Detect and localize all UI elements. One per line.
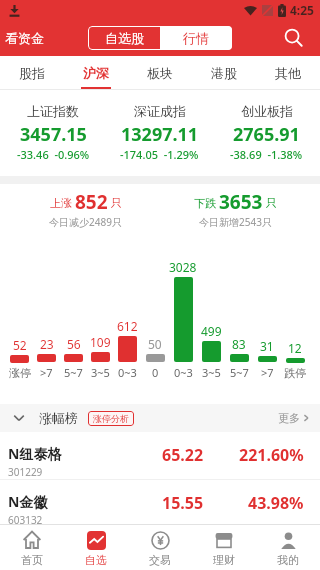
staticText: 上证指数 <box>27 103 79 119</box>
button[interactable]: 深证成指 <box>106 90 213 162</box>
staticText: 涨停 <box>9 366 31 380</box>
staticText: 56 <box>67 336 81 352</box>
staticText: 深证成指 <box>134 103 186 119</box>
staticText: 创业板指 <box>241 103 293 119</box>
staticText: 499 <box>201 323 222 339</box>
staticText: 2765.91 <box>233 122 300 147</box>
button[interactable]: 上证指数 <box>0 90 106 162</box>
staticText: 3028 <box>169 259 197 275</box>
staticText: 5~7 <box>64 365 83 380</box>
staticText: 301229 <box>8 465 43 479</box>
staticText: 上涨 <box>50 195 75 210</box>
staticText: -33.46 -0.96% <box>17 147 90 162</box>
staticText: >7 <box>261 365 274 380</box>
button[interactable]: 股指 <box>0 56 64 89</box>
staticText: 港股 <box>211 65 237 81</box>
staticText: 3457.15 <box>20 122 87 147</box>
staticText: 109 <box>90 334 111 350</box>
button[interactable]: N纽泰格 <box>0 432 320 479</box>
staticText: 12 <box>288 340 302 356</box>
button[interactable]: 交易 <box>128 525 192 570</box>
staticText: 23 <box>40 336 54 352</box>
staticText: 65.22 <box>162 444 204 466</box>
staticText: 沪深 <box>83 65 109 81</box>
staticText: 自选股 <box>105 30 144 46</box>
staticText: 我的 <box>277 553 299 567</box>
staticText: 221.60% <box>239 444 304 466</box>
staticText: 612 <box>117 318 138 334</box>
button[interactable]: 港股 <box>192 56 256 89</box>
staticText: 3653 <box>219 189 263 215</box>
button[interactable]: 涨停分析 <box>88 411 134 426</box>
staticText: N金徽 <box>8 492 48 511</box>
staticText: 3~5 <box>202 365 221 380</box>
staticText: 更多 <box>278 411 300 425</box>
staticText: 5~7 <box>230 365 249 380</box>
staticText: 只 <box>263 195 277 210</box>
button[interactable]: N金徽 <box>0 480 320 524</box>
staticText: 31 <box>260 338 274 354</box>
staticText: 83 <box>232 336 246 352</box>
staticText: 跌停 <box>284 366 306 380</box>
staticText: 股指 <box>19 65 45 81</box>
button[interactable]: 沪深 <box>64 56 128 89</box>
staticText: 13297.11 <box>121 122 199 147</box>
button[interactable]: 其他 <box>256 56 320 89</box>
staticText: 52 <box>13 337 27 353</box>
staticText: 50 <box>148 336 162 352</box>
button[interactable]: 首页 <box>0 525 64 570</box>
staticText: 852 <box>75 189 108 215</box>
staticText: 板块 <box>147 65 173 81</box>
staticText: 今日新增2543只 <box>199 215 272 229</box>
staticText: -174.05 -1.29% <box>120 147 199 162</box>
button[interactable]: 看资金 <box>5 30 44 46</box>
staticText: 只 <box>108 195 122 210</box>
button[interactable]: 更多 <box>278 411 310 425</box>
button[interactable] <box>282 26 306 50</box>
staticText: 下跌 <box>194 195 219 210</box>
button[interactable]: 自选股 <box>88 26 160 50</box>
staticText: 0~3 <box>174 365 193 380</box>
button[interactable]: 创业板指 <box>213 90 320 162</box>
staticText: 603132 <box>8 513 43 524</box>
button[interactable]: 行情 <box>160 26 232 50</box>
staticText: 15.55 <box>162 492 204 514</box>
staticText: 其他 <box>275 65 301 81</box>
button[interactable]: 板块 <box>128 56 192 89</box>
staticText: 理财 <box>213 553 235 567</box>
button[interactable]: 自选 <box>64 525 128 570</box>
staticText: 首页 <box>21 553 43 567</box>
staticText: 自选 <box>85 553 107 567</box>
staticText: 涨停分析 <box>93 413 129 424</box>
staticText: 4:25 <box>290 2 314 18</box>
staticText: N纽泰格 <box>8 444 62 463</box>
staticText: >7 <box>40 365 53 380</box>
staticText: 3~5 <box>91 365 110 380</box>
staticText: -38.69 -1.38% <box>230 147 303 162</box>
button[interactable]: 涨幅榜 <box>39 410 78 426</box>
staticText: 行情 <box>183 30 209 46</box>
staticText: 0~3 <box>118 365 137 380</box>
staticText: 43.98% <box>248 492 304 514</box>
staticText: 0 <box>152 365 159 380</box>
button[interactable]: 理财 <box>192 525 256 570</box>
staticText: 交易 <box>149 553 171 567</box>
staticText: 今日减少2489只 <box>49 215 122 229</box>
button[interactable]: 我的 <box>256 525 320 570</box>
